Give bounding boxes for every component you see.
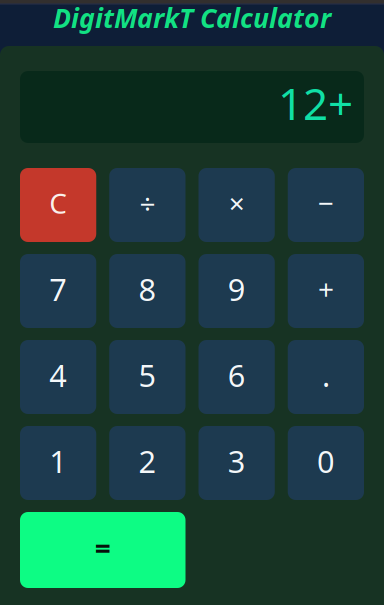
button[interactable]: 3 bbox=[198, 426, 275, 500]
staticText: 1 bbox=[49, 441, 67, 481]
button[interactable]: 1 bbox=[20, 426, 96, 500]
button[interactable]: 0 bbox=[288, 426, 364, 500]
button[interactable]: ÷ bbox=[109, 168, 185, 242]
staticText: 12+ bbox=[278, 74, 353, 132]
button[interactable]: 7 bbox=[20, 254, 96, 328]
staticText: 5 bbox=[138, 355, 156, 395]
button[interactable]: . bbox=[288, 340, 364, 414]
staticText: 6 bbox=[228, 355, 246, 395]
staticText: C bbox=[49, 184, 67, 222]
staticText: 2 bbox=[138, 441, 156, 481]
staticText: 3 bbox=[228, 441, 246, 481]
staticText: . bbox=[322, 355, 330, 395]
button[interactable]: 9 bbox=[198, 254, 275, 328]
staticText: × bbox=[229, 184, 245, 222]
staticText: − bbox=[318, 184, 334, 222]
staticText: 7 bbox=[49, 269, 67, 309]
staticText: = bbox=[95, 529, 111, 567]
button[interactable]: + bbox=[288, 254, 364, 328]
button[interactable]: × bbox=[198, 168, 275, 242]
staticText: 0 bbox=[317, 441, 335, 481]
button[interactable]: = bbox=[20, 512, 185, 588]
staticText: ÷ bbox=[139, 184, 155, 222]
staticText: DigitMarkT Calculator bbox=[53, 0, 331, 35]
staticText: 4 bbox=[49, 355, 67, 395]
button[interactable]: 5 bbox=[109, 340, 185, 414]
staticText: + bbox=[318, 270, 334, 308]
button[interactable]: C bbox=[20, 168, 96, 242]
button[interactable]: 2 bbox=[109, 426, 185, 500]
button[interactable]: 8 bbox=[109, 254, 185, 328]
staticText: 9 bbox=[228, 269, 246, 309]
button[interactable]: 6 bbox=[198, 340, 275, 414]
button[interactable]: 4 bbox=[20, 340, 96, 414]
button[interactable]: − bbox=[288, 168, 364, 242]
staticText: 8 bbox=[138, 269, 156, 309]
